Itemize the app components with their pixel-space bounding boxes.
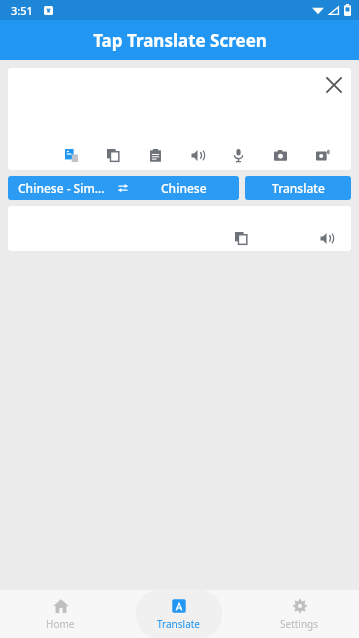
- staticText: Chinese: [161, 180, 207, 196]
- button[interactable]: Close: [317, 68, 351, 102]
- button[interactable]: Copy result: [230, 227, 252, 249]
- button[interactable]: Microphone: [227, 144, 249, 166]
- button[interactable]: Translate: [245, 176, 351, 200]
- button[interactable]: Translate document: [60, 144, 82, 166]
- button[interactable]: Listen: [186, 144, 208, 166]
- button[interactable]: Chinese - Sim...: [8, 176, 239, 200]
- button[interactable]: Copy: [102, 144, 124, 166]
- staticText: 3:51: [11, 3, 33, 18]
- staticText: Translate: [272, 180, 325, 196]
- staticText: Tap Translate Screen: [93, 29, 267, 52]
- button[interactable]: Listen to result: [315, 227, 337, 249]
- button[interactable]: Camera: [269, 144, 291, 166]
- button[interactable]: Translate: [136, 590, 222, 638]
- button[interactable]: Home: [17, 590, 103, 638]
- button[interactable]: Paste: [144, 144, 166, 166]
- staticText: Chinese - Sim...: [18, 180, 105, 196]
- staticText: Translate: [157, 617, 201, 631]
- staticText: Home: [46, 617, 75, 631]
- staticText: Settings: [280, 617, 319, 631]
- button[interactable]: Settings: [256, 590, 342, 638]
- button[interactable]: Scan text: [311, 144, 333, 166]
